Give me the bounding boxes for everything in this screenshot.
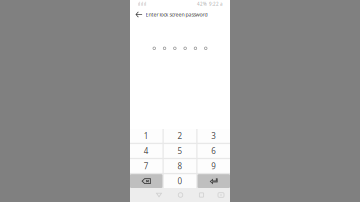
button[interactable]: Home bbox=[170, 188, 191, 202]
staticText: Enter lock screen password bbox=[145, 11, 207, 18]
button[interactable]: 5 bbox=[164, 144, 196, 158]
button[interactable]: Delete bbox=[130, 174, 162, 188]
staticText: 2 bbox=[177, 130, 182, 141]
staticText: 7 bbox=[144, 161, 149, 171]
button[interactable]: Enter lock screen password bbox=[130, 8, 230, 21]
staticText: 3 bbox=[211, 130, 216, 141]
button[interactable]: 0 bbox=[164, 174, 196, 188]
button[interactable]: 1 bbox=[130, 129, 162, 143]
button[interactable]: Back bbox=[148, 188, 170, 202]
button[interactable]: Recent apps bbox=[191, 188, 212, 202]
button[interactable]: 8 bbox=[164, 159, 196, 173]
staticText: 9 bbox=[211, 161, 216, 171]
staticText: 4 bbox=[144, 145, 149, 156]
button[interactable]: 9 bbox=[197, 159, 230, 173]
staticText: ıl ıl ıl bbox=[138, 1, 146, 7]
staticText: 0 bbox=[177, 176, 182, 187]
button[interactable]: Screenshot bbox=[212, 188, 230, 202]
button[interactable]: 2 bbox=[164, 129, 196, 143]
staticText: 42% 9:22 a bbox=[197, 1, 223, 7]
staticText: 5 bbox=[177, 145, 182, 156]
button[interactable]: 7 bbox=[130, 159, 162, 173]
button[interactable]: 6 bbox=[197, 144, 230, 158]
staticText: 8 bbox=[177, 161, 182, 171]
staticText: 1 bbox=[144, 130, 149, 141]
button[interactable]: 4 bbox=[130, 144, 162, 158]
button[interactable]: Enter bbox=[197, 174, 230, 188]
button[interactable]: 3 bbox=[197, 129, 230, 143]
staticText: 6 bbox=[211, 145, 216, 156]
